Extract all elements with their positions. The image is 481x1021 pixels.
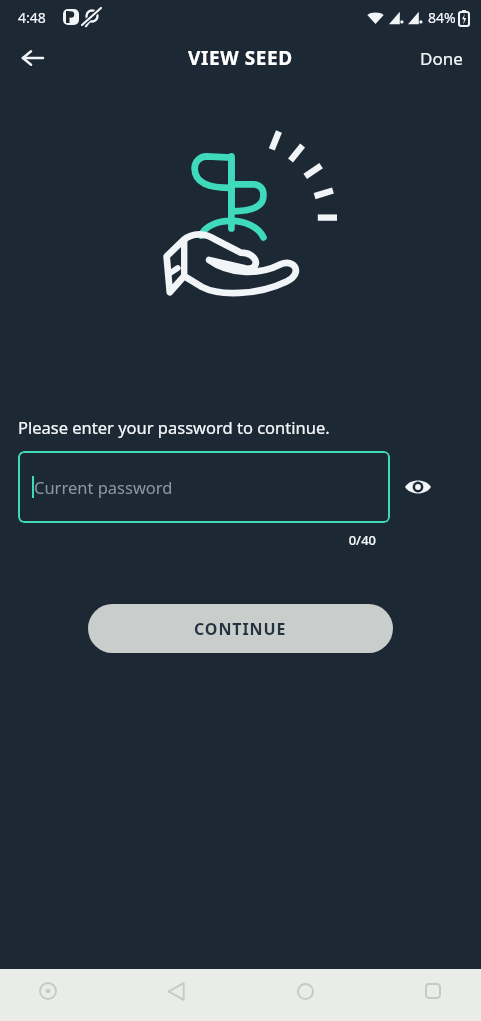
staticText: Current password	[34, 476, 173, 498]
button[interactable]: Assistant	[26, 969, 70, 1013]
staticText: 84%	[428, 8, 456, 27]
staticText: 4:48	[18, 8, 46, 27]
button[interactable]: Current password	[18, 451, 390, 523]
button[interactable]: Show password	[396, 465, 440, 509]
button[interactable]: Recents	[411, 969, 455, 1013]
staticText: 0/40	[0, 531, 376, 549]
staticText: VIEW SEED	[188, 45, 293, 71]
staticText: Done	[420, 47, 463, 70]
button[interactable]: CONTINUE	[88, 604, 393, 653]
staticText: CONTINUE	[194, 618, 287, 640]
staticText: Please enter your password to continue.	[18, 416, 330, 438]
button[interactable]: Back	[12, 37, 54, 79]
button[interactable]: Back	[154, 969, 198, 1013]
button[interactable]: Home	[283, 969, 327, 1013]
button[interactable]: Done	[412, 41, 471, 76]
